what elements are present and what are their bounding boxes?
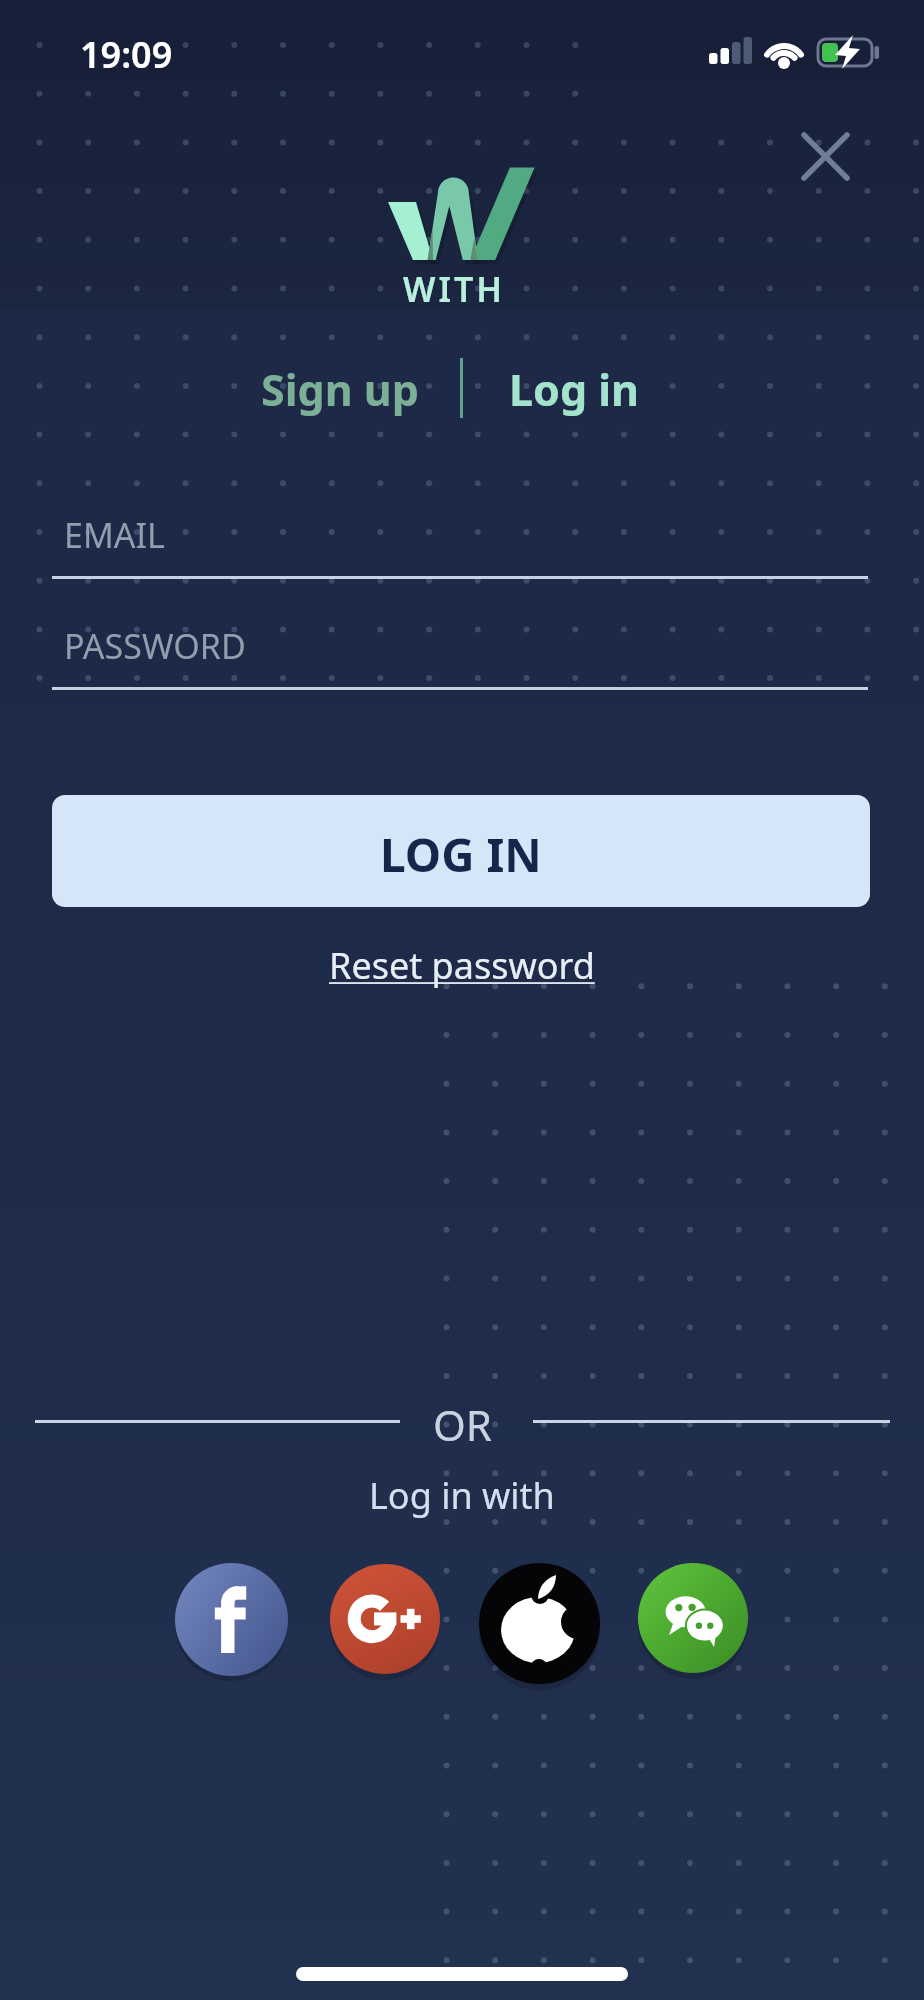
staticText: Sign up	[261, 360, 419, 419]
button[interactable]: Sign up	[261, 360, 419, 419]
button[interactable]: PASSWORD	[52, 615, 868, 690]
staticText: Reset password	[329, 941, 595, 990]
button[interactable]	[638, 1563, 748, 1673]
staticText: 19:09	[80, 30, 173, 79]
staticText: WITH	[403, 266, 506, 312]
button[interactable]: Log in	[509, 360, 640, 419]
button[interactable]	[175, 1563, 288, 1676]
staticText: Log in	[509, 360, 640, 419]
button[interactable]	[330, 1564, 440, 1674]
button[interactable]: LOG IN	[52, 795, 870, 907]
staticText: EMAIL	[64, 512, 165, 558]
button[interactable]	[479, 1563, 600, 1684]
button[interactable]: Reset password	[329, 941, 595, 990]
staticText: PASSWORD	[64, 623, 246, 669]
staticText: LOG IN	[380, 823, 542, 886]
staticText: OR	[433, 1396, 492, 1453]
button[interactable]	[795, 126, 855, 186]
staticText: Log in with	[369, 1471, 555, 1520]
button[interactable]: EMAIL	[52, 504, 868, 579]
